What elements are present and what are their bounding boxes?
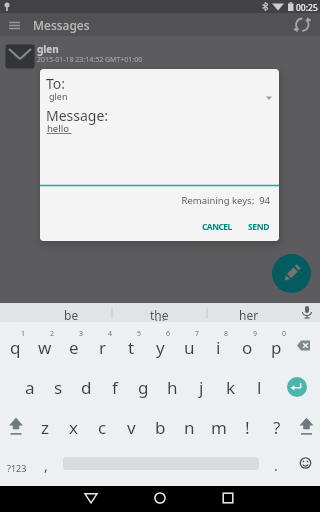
button[interactable] (292, 15, 314, 34)
button[interactable]: q (0, 326, 30, 366)
button[interactable]: l (245, 366, 274, 406)
button[interactable]: hello (47, 122, 69, 135)
button[interactable]: m (204, 406, 233, 446)
button[interactable]: f (100, 366, 129, 406)
button[interactable]: c (88, 406, 117, 446)
button[interactable]: glen (0, 36, 320, 72)
staticText: 4 (108, 329, 113, 339)
button[interactable] (4, 15, 26, 34)
button[interactable]: t (117, 326, 146, 366)
button[interactable]: be (30, 303, 112, 322)
staticText: , (44, 456, 48, 475)
button[interactable]: g (129, 366, 158, 406)
staticText: 8 (224, 329, 229, 339)
staticText: be (64, 307, 79, 323)
button[interactable]: the (112, 303, 207, 322)
staticText: . (274, 456, 278, 475)
staticText: c (98, 416, 107, 439)
button[interactable] (294, 303, 320, 322)
staticText: 3 (79, 329, 84, 339)
staticText: i (216, 336, 221, 359)
staticText: ? (273, 416, 281, 439)
button[interactable]: v (117, 406, 146, 446)
button[interactable]: s (44, 366, 72, 406)
button[interactable]: r (88, 326, 117, 366)
button[interactable]: b (146, 406, 175, 446)
staticText: 7 (195, 329, 200, 339)
staticText: x (69, 416, 78, 439)
button[interactable] (291, 406, 320, 446)
button[interactable]: . (264, 446, 288, 486)
button[interactable]: p (262, 326, 291, 366)
button[interactable] (0, 406, 30, 446)
button[interactable]: a (16, 366, 44, 406)
button[interactable]: o (233, 326, 262, 366)
staticText: 00:25 (296, 2, 318, 14)
staticText: k (226, 376, 236, 399)
button[interactable]: y (146, 326, 175, 366)
button[interactable]: j (187, 366, 216, 406)
staticText: a (25, 376, 35, 399)
button[interactable]: i (204, 326, 233, 366)
staticText: CANCEL (202, 221, 232, 233)
button[interactable] (272, 254, 311, 293)
button[interactable]: k (216, 366, 245, 406)
staticText: Remaining keys: 94 (40, 194, 270, 207)
staticText: glen (49, 90, 68, 102)
staticText: 6 (166, 329, 171, 339)
staticText: q (10, 336, 21, 359)
staticText: y (156, 336, 165, 359)
staticText: o (242, 336, 253, 359)
button[interactable] (0, 486, 320, 512)
staticText: v (127, 416, 136, 439)
button[interactable]: d (72, 366, 100, 406)
staticText: p (271, 336, 282, 359)
staticText: g (138, 376, 149, 399)
button[interactable]: glen (47, 89, 272, 103)
staticText: h (167, 376, 178, 399)
button[interactable] (208, 486, 248, 512)
button[interactable] (292, 446, 320, 486)
button[interactable]: ! (233, 406, 262, 446)
staticText: the (150, 307, 169, 323)
staticText: b (155, 416, 166, 439)
button[interactable]: her (207, 303, 290, 322)
button[interactable]: CANCEL (191, 217, 243, 237)
button[interactable] (140, 486, 180, 512)
staticText: f (112, 376, 118, 399)
staticText: To: (46, 74, 66, 93)
staticText: 2 (50, 329, 55, 339)
staticText: 9 (253, 329, 258, 339)
staticText: 2015-01-18 23:14:52 GMT+01:00 (37, 55, 143, 65)
button[interactable]: SEND (238, 217, 278, 237)
staticText: m (211, 416, 227, 439)
staticText: j (199, 376, 204, 399)
button[interactable] (291, 326, 320, 366)
staticText: SEND (248, 221, 269, 233)
button[interactable]: z (30, 406, 59, 446)
button[interactable]: u (175, 326, 204, 366)
staticText: glen (37, 42, 59, 56)
staticText: u (184, 336, 195, 359)
button[interactable]: ? (262, 406, 291, 446)
staticText: 0 (282, 329, 287, 339)
staticText: t (128, 336, 135, 359)
button[interactable]: , (34, 446, 58, 486)
button[interactable]: w (30, 326, 59, 366)
staticText: r (99, 336, 107, 359)
staticText: 5 (137, 329, 142, 339)
staticText: Message: (46, 106, 109, 125)
staticText: z (41, 416, 49, 439)
button[interactable]: e (59, 326, 88, 366)
staticText: Messages (33, 17, 90, 33)
staticText: 1 (21, 329, 26, 339)
button[interactable]: ?123 (3, 446, 30, 486)
staticText: ! (245, 416, 250, 439)
button[interactable]: h (158, 366, 187, 406)
staticText: l (257, 376, 262, 399)
staticText: d (81, 376, 92, 399)
button[interactable]: n (175, 406, 204, 446)
button[interactable] (287, 377, 307, 397)
button[interactable]: x (59, 406, 88, 446)
